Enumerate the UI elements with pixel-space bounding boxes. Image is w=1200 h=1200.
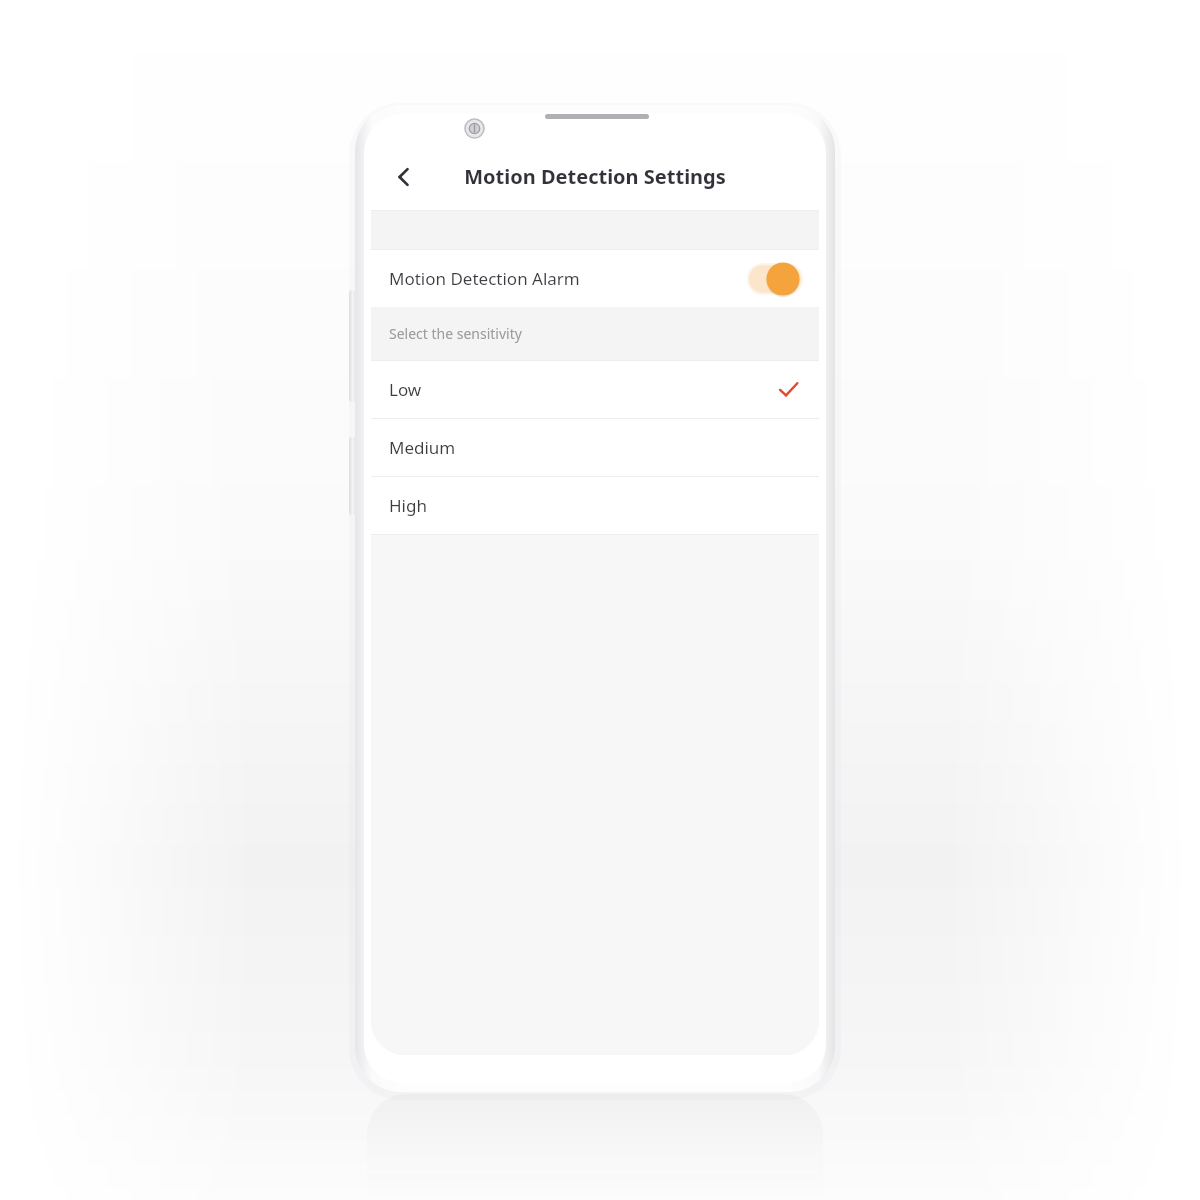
button[interactable]: Motion Detection Alarm toggle — [749, 264, 801, 294]
staticText: Medium — [389, 436, 456, 459]
staticText: Motion Detection Settings — [464, 163, 726, 190]
button[interactable]: Motion Detection Alarm — [371, 250, 819, 307]
staticText: Select the sensitivity — [389, 324, 522, 343]
staticText: Low — [389, 378, 422, 401]
button[interactable]: Low — [371, 361, 819, 418]
staticText: Motion Detection Alarm — [389, 267, 580, 290]
button[interactable]: High — [371, 477, 819, 534]
button[interactable]: Medium — [371, 419, 819, 476]
button[interactable]: Back — [381, 154, 427, 200]
staticText: High — [389, 494, 427, 517]
